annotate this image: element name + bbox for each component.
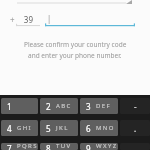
button[interactable]: 7 PQRS — [1, 143, 38, 150]
button[interactable]: 8 TUV — [40, 143, 78, 150]
button[interactable]: 6 MNO — [80, 120, 118, 136]
staticText: 7 — [7, 143, 12, 150]
staticText: DEF — [96, 102, 112, 110]
staticText: ABC — [56, 102, 72, 110]
staticText: 9 — [86, 143, 91, 150]
staticText: 8 — [46, 143, 51, 150]
staticText: 39 — [17, 14, 33, 25]
staticText: GHI — [17, 124, 33, 132]
staticText: WXYZ — [96, 143, 118, 149]
button[interactable]: 4 GHI — [1, 120, 38, 136]
staticText: JKL — [56, 124, 69, 132]
button[interactable]: 39 — [17, 14, 33, 25]
staticText: + — [10, 14, 15, 25]
button[interactable]: 2 ABC — [40, 98, 78, 114]
staticText: and enter your phone number. — [28, 51, 122, 60]
staticText: 1 — [7, 101, 12, 112]
button[interactable]: - — [120, 98, 150, 114]
staticText: 6 — [86, 123, 91, 134]
staticText: 5 — [46, 123, 51, 134]
staticText: TUV — [56, 143, 72, 149]
button[interactable]: 9 WXYZ — [80, 143, 118, 150]
staticText: 2 — [46, 101, 51, 112]
staticText: 3 — [86, 101, 91, 112]
staticText: Please confirm your country code — [24, 40, 127, 49]
button[interactable]: 5 JKL — [40, 120, 78, 136]
staticText: - — [134, 101, 137, 112]
staticText: 4 — [7, 123, 12, 134]
staticText: . — [134, 123, 137, 134]
staticText: PQRS — [17, 143, 38, 149]
button[interactable]: 3 DEF — [80, 98, 118, 114]
staticText: MNO — [96, 124, 115, 132]
button[interactable]: . — [120, 120, 150, 136]
button[interactable]: 1 — [1, 98, 38, 114]
